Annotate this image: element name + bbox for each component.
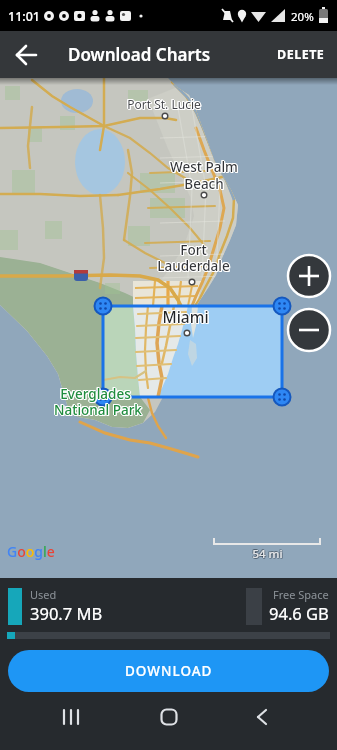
staticText: Everglades [59, 385, 130, 403]
staticText: Beach [183, 175, 223, 193]
staticText: National Park [55, 401, 143, 419]
staticText: 54 mi [252, 546, 283, 562]
staticText: Download Charts [68, 43, 211, 66]
staticText: Port St. Lucie [128, 96, 202, 112]
staticText: Fort [180, 242, 207, 260]
staticText: Everglades [60, 386, 131, 404]
staticText: 94.6 GB [269, 602, 329, 624]
staticText: Miami [163, 306, 210, 327]
staticText: Fort [179, 241, 206, 259]
staticText: 54 mi [252, 547, 283, 563]
staticText: 390.7 MB [30, 602, 103, 624]
staticText: Free Space [273, 587, 329, 602]
staticText: 20% [291, 9, 314, 25]
staticText: Everglades [61, 385, 132, 403]
staticText: Port St. Lucie [127, 95, 201, 111]
staticText: West Palm [169, 157, 237, 175]
staticText: West Palm [171, 158, 239, 176]
staticText: West Palm [170, 158, 238, 176]
staticText: DOWNLOAD [125, 662, 213, 680]
staticText: Beach [183, 174, 223, 192]
staticText: National Park [54, 402, 142, 420]
staticText: Everglades [60, 385, 131, 403]
staticText: Miami [161, 305, 208, 326]
staticText: Beach [185, 175, 225, 193]
staticText: Fort [181, 242, 208, 260]
staticText: Lauderdale [156, 256, 229, 274]
staticText: Miami [163, 307, 210, 328]
staticText: Lauderdale [156, 257, 229, 275]
staticText: Fort [181, 241, 208, 259]
staticText: Everglades [59, 384, 130, 402]
staticText: Beach [184, 174, 224, 192]
staticText: Port St. Lucie [126, 96, 200, 112]
staticText: Port St. Lucie [127, 97, 201, 113]
staticText: Fort [179, 240, 206, 258]
staticText: Everglades [60, 384, 131, 402]
staticText: Miami [162, 306, 209, 327]
staticText: National Park [55, 402, 143, 420]
staticText: Port St. Lucie [128, 97, 202, 113]
staticText: DELETE [277, 46, 325, 63]
staticText: Beach [184, 175, 224, 193]
staticText: Lauderdale [157, 257, 230, 275]
staticText: 54 mi [253, 546, 284, 562]
staticText: West Palm [170, 157, 238, 175]
staticText: 54 mi [251, 545, 282, 561]
staticText: Lauderdale [157, 256, 230, 274]
staticText: West Palm [171, 159, 239, 177]
staticText: Used [30, 587, 57, 602]
staticText: 54 mi [253, 547, 284, 563]
staticText: Port St. Lucie [127, 96, 201, 112]
staticText: Everglades [61, 386, 132, 404]
staticText: Fort [180, 241, 207, 259]
staticText: National Park [54, 400, 142, 418]
staticText: Beach [185, 176, 225, 194]
staticText: Miami [161, 306, 208, 327]
staticText: Lauderdale [158, 258, 231, 276]
staticText: National Park [54, 401, 142, 419]
staticText: Fort [180, 240, 207, 258]
staticText: Google [7, 542, 55, 561]
staticText: 54 mi [251, 546, 282, 562]
staticText: Miami [162, 305, 209, 326]
staticText: Miami [162, 307, 209, 328]
staticText: West Palm [169, 158, 237, 176]
staticText: Beach [184, 176, 224, 194]
staticText: Lauderdale [158, 257, 231, 275]
staticText: Port St. Lucie [126, 95, 200, 111]
staticText: 11:01 [8, 8, 41, 25]
staticText: National Park [53, 401, 141, 419]
staticText: West Palm [170, 159, 238, 177]
staticText: Lauderdale [157, 258, 230, 276]
staticText: National Park [53, 400, 141, 418]
staticText: 54 mi [252, 545, 283, 561]
